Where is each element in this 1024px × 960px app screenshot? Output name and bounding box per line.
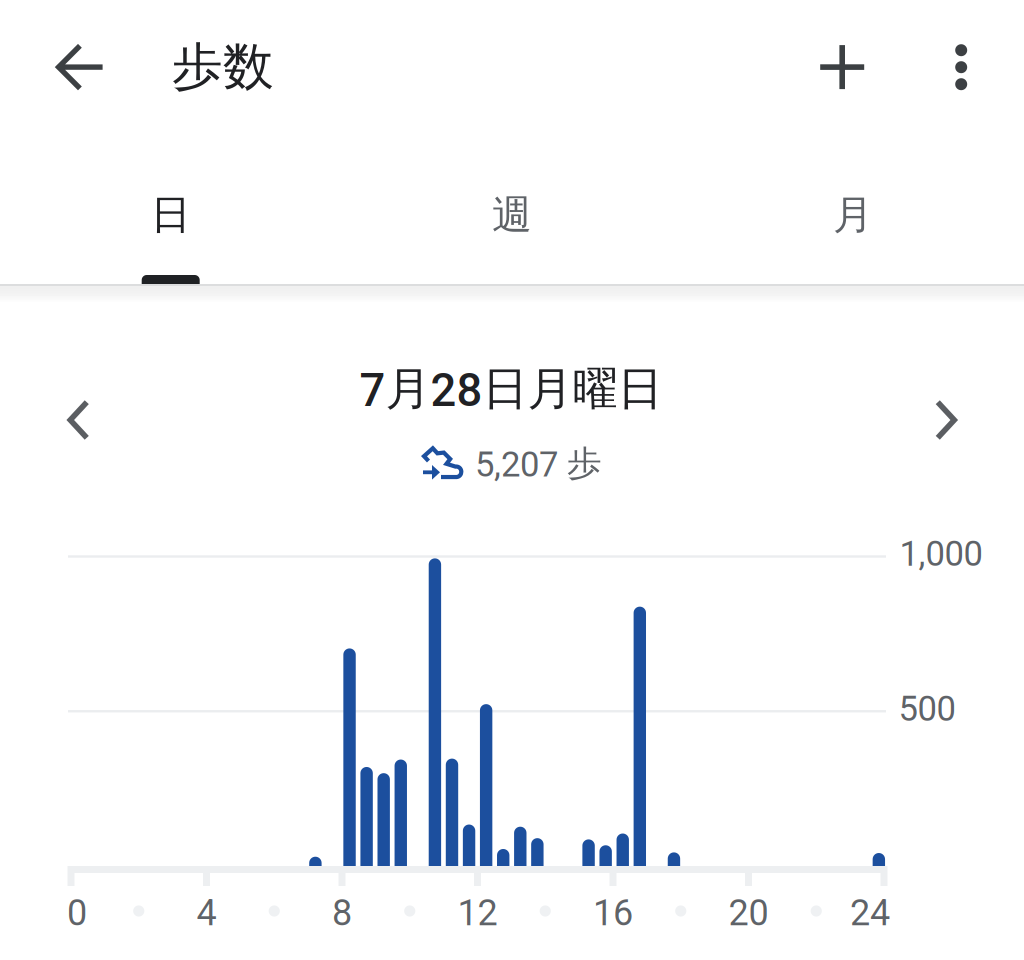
button[interactable]: Next day bbox=[899, 374, 991, 466]
staticText: 16 bbox=[593, 892, 633, 934]
staticText: 0 bbox=[67, 892, 87, 934]
button[interactable]: More options bbox=[921, 21, 1001, 113]
button[interactable]: Previous day bbox=[33, 374, 125, 466]
button[interactable]: 月 bbox=[682, 115, 1023, 286]
staticText: 12 bbox=[457, 892, 497, 934]
staticText: 8 bbox=[332, 892, 352, 934]
staticText: 5,207 歩 bbox=[475, 442, 602, 485]
staticText: 7月28日月曜日 bbox=[359, 360, 662, 417]
button[interactable]: Add bbox=[796, 21, 888, 113]
button[interactable]: Back bbox=[34, 21, 126, 113]
staticText: 4 bbox=[196, 892, 216, 934]
staticText: 歩数 bbox=[172, 35, 274, 99]
staticText: 20 bbox=[728, 892, 768, 934]
staticText: 月 bbox=[833, 190, 873, 240]
staticText: 日 bbox=[151, 190, 191, 240]
staticText: 週 bbox=[492, 190, 532, 240]
staticText: 500 bbox=[898, 689, 955, 729]
button[interactable]: 週 bbox=[341, 115, 682, 286]
staticText: 1,000 bbox=[899, 534, 982, 574]
button[interactable]: 日 bbox=[0, 115, 341, 286]
staticText: 24 bbox=[850, 892, 890, 934]
